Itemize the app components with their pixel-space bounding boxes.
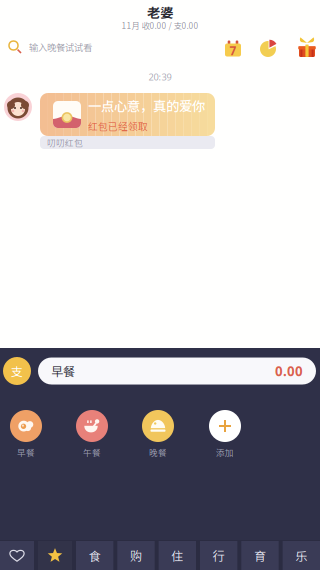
button[interactable]: 早餐 <box>38 357 316 384</box>
button[interactable]: 午餐 <box>66 410 118 458</box>
button[interactable]: 乐 <box>283 541 320 570</box>
staticText: 乐 <box>295 547 307 564</box>
staticText: 行 <box>213 547 225 564</box>
button[interactable]: 星标 <box>38 541 72 570</box>
button[interactable]: 育 <box>241 541 279 570</box>
staticText: 11月 收0.00 / 支0.00 <box>121 19 198 31</box>
button[interactable]: 行 <box>200 541 237 570</box>
button[interactable]: 晚餐 <box>132 410 184 458</box>
button[interactable]: 购 <box>117 541 155 570</box>
button[interactable]: 收藏 <box>0 541 34 570</box>
staticText: 早餐 <box>17 446 35 458</box>
staticText: 添加 <box>216 446 234 458</box>
button[interactable]: 早餐 <box>0 410 52 458</box>
staticText: 老婆 <box>147 2 173 22</box>
button[interactable]: 统计 <box>259 40 277 58</box>
staticText: 输入晚餐试试看 <box>29 40 92 54</box>
staticText: 食 <box>89 547 101 564</box>
button[interactable]: 住 <box>159 541 196 570</box>
staticText: 午餐 <box>83 446 101 458</box>
button[interactable]: 日历 <box>224 38 242 58</box>
button[interactable]: 食 <box>76 541 113 570</box>
staticText: 7 <box>229 42 236 58</box>
staticText: 支 <box>11 362 23 380</box>
button[interactable]: 添加 <box>199 410 251 458</box>
staticText: 晚餐 <box>149 446 167 458</box>
button[interactable]: 支出 <box>3 357 31 385</box>
staticText: 育 <box>254 547 266 564</box>
button[interactable]: 礼物 <box>298 38 316 58</box>
staticText: 叨叨红包 <box>47 136 83 149</box>
staticText: 红包已经领取 <box>88 119 148 133</box>
staticText: 购 <box>130 547 142 564</box>
staticText: 20:39 <box>148 71 171 83</box>
staticText: 早餐 <box>51 362 75 380</box>
staticText: 一点心意，真的爱你 <box>88 96 205 115</box>
staticText: 0.00 <box>275 362 303 380</box>
staticText: 住 <box>171 547 183 564</box>
